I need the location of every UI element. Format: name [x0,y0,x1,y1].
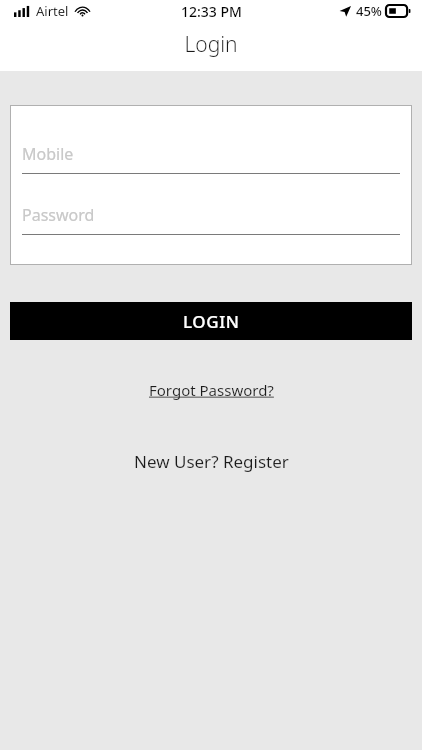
staticText: Forgot Password? [149,380,274,400]
staticText: Login [0,30,422,59]
staticText: Password [22,204,95,226]
staticText: New User? Register [134,450,289,473]
button[interactable]: LOGIN [10,302,412,340]
button[interactable]: New User? Register [134,450,289,473]
staticText: LOGIN [183,310,240,333]
button[interactable]: Password [10,204,412,235]
staticText: Airtel [36,2,69,20]
staticText: Mobile [22,143,74,165]
staticText: 12:33 PM [181,2,242,21]
staticText: 45% [356,2,382,20]
button[interactable]: Forgot Password? [149,380,274,400]
button[interactable]: Mobile [10,143,412,174]
